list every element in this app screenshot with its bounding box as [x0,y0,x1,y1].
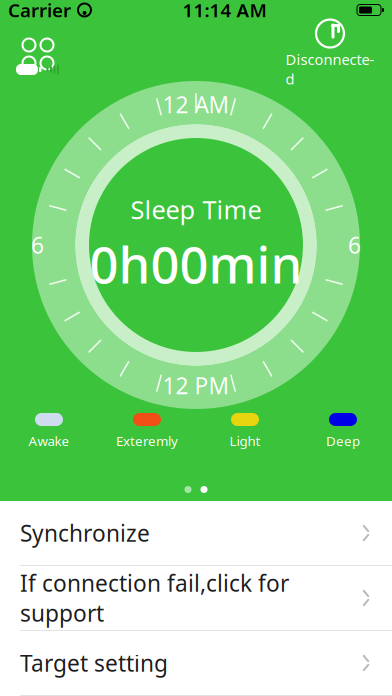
staticText: Deep [326,432,360,450]
staticText: Sleep Time [130,192,261,226]
staticText: 6 [348,230,361,260]
staticText: Awake [28,432,69,450]
button[interactable]: Menu [16,32,60,76]
button[interactable]: Synchronize [0,501,392,565]
staticText: 12 AM [162,89,229,120]
staticText: 11:14 AM [182,0,266,22]
staticText: 6 [31,230,44,260]
button[interactable]: Target setting [0,631,392,695]
staticText: If connection fail,click for support [20,568,289,628]
button[interactable]: Disconnected, reconnect [284,26,376,82]
staticText: Disconnected [285,49,374,88]
staticText: 0h00min [89,230,302,297]
staticText: Synchronize [20,518,150,548]
staticText: Target setting [20,648,168,678]
staticText: Exteremly [116,432,178,450]
staticText: 12 PM [162,370,229,400]
staticText: Light [229,432,260,450]
button[interactable]: If connection fail,click for support [0,566,392,630]
staticText: Carrier [8,0,71,22]
